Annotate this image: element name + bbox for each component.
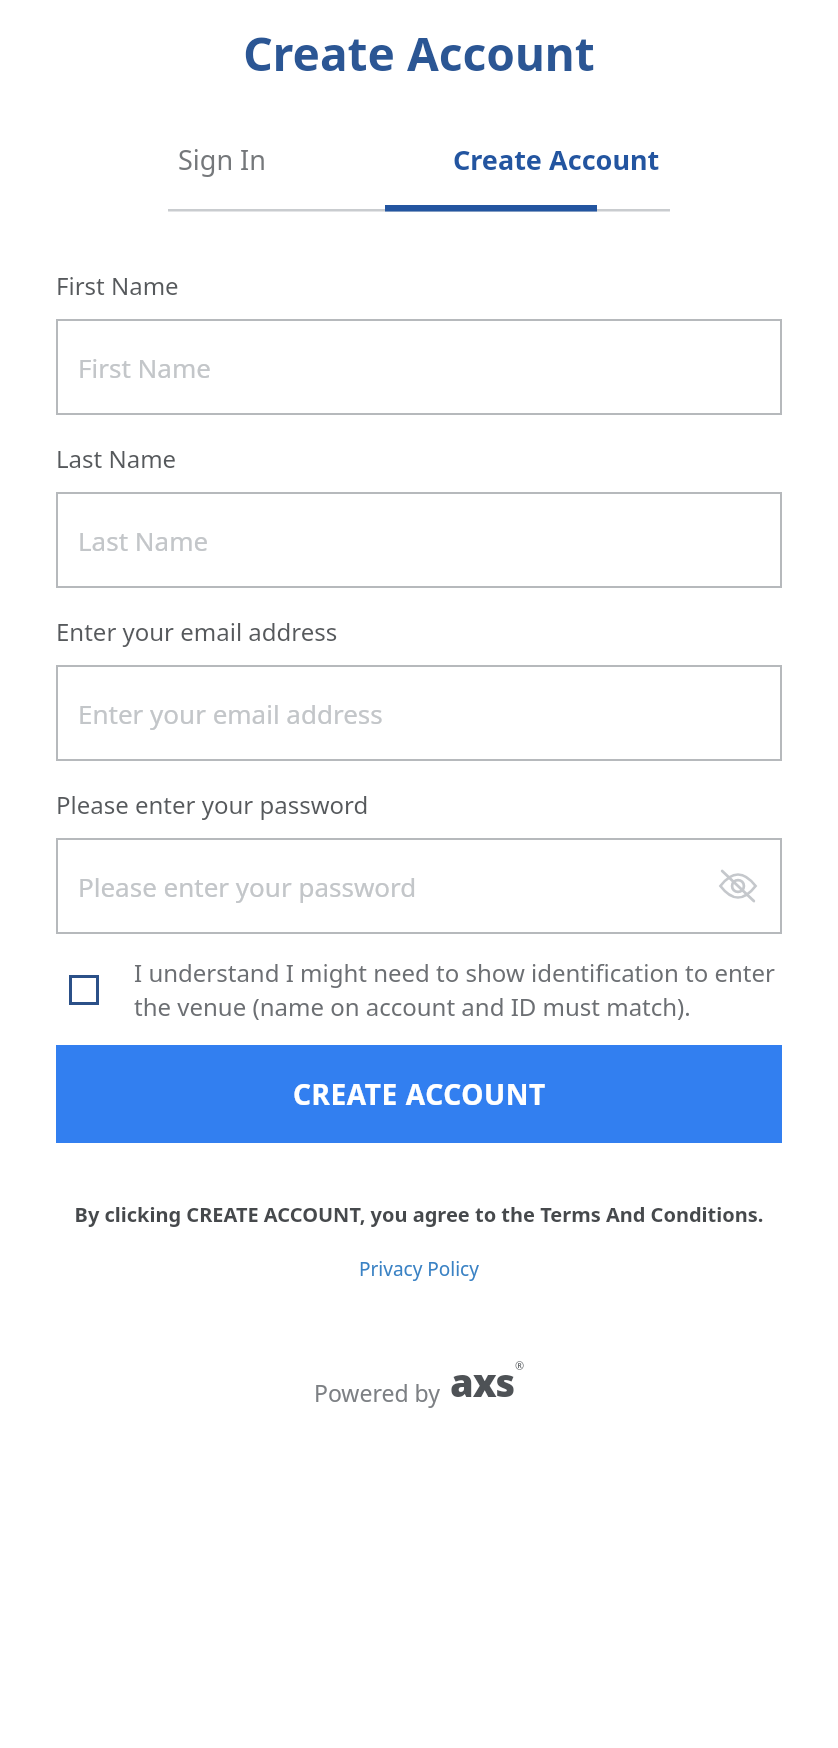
button[interactable]: I understand I might need to show identi…	[56, 956, 782, 1023]
button[interactable]: First Name	[56, 319, 782, 415]
button[interactable]: Last Name	[56, 492, 782, 588]
staticText: Last Name	[78, 523, 209, 558]
button[interactable]: Please enter your password	[56, 838, 782, 934]
staticText: Enter your email address	[78, 696, 383, 731]
staticText: Enter your email address	[56, 615, 338, 648]
staticText: Sign In	[178, 141, 266, 178]
staticText: Last Name	[56, 442, 177, 475]
staticText: First Name	[78, 350, 211, 385]
staticText: By clicking CREATE ACCOUNT, you agree to…	[20, 1201, 818, 1228]
staticText: Create Account	[0, 22, 838, 85]
button[interactable]: Create Account	[443, 135, 670, 184]
staticText: I understand I might need to show identi…	[134, 956, 782, 1023]
button[interactable]: Privacy Policy	[351, 1254, 487, 1284]
staticText: Create Account	[453, 141, 660, 178]
staticText: axs	[450, 1356, 515, 1408]
button[interactable]: Show password	[712, 860, 764, 912]
button[interactable]: Sign In	[168, 135, 276, 184]
staticText: First Name	[56, 269, 179, 302]
staticText: CREATE ACCOUNT	[293, 1075, 546, 1113]
staticText: Powered by	[314, 1377, 440, 1408]
staticText: ®	[515, 1358, 525, 1373]
button[interactable]: Enter your email address	[56, 665, 782, 761]
staticText: Please enter your password	[78, 869, 417, 904]
staticText: Please enter your password	[56, 788, 369, 821]
button[interactable]: CREATE ACCOUNT	[56, 1045, 782, 1143]
